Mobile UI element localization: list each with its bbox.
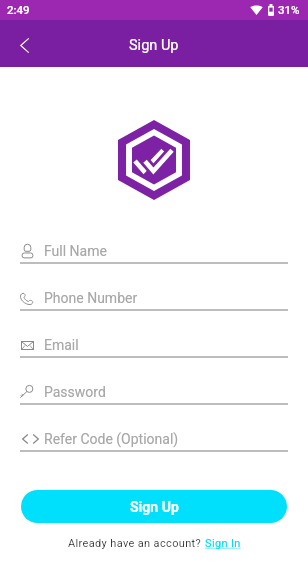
staticText: Sign Up (129, 37, 179, 54)
button[interactable]: Back (0, 20, 44, 67)
staticText: 31% (278, 3, 300, 16)
button[interactable]: Full Name (20, 231, 288, 262)
button[interactable]: Email (20, 325, 288, 356)
staticText: Full Name (44, 243, 107, 259)
staticText: Already have an account? (68, 537, 205, 550)
button[interactable]: Sign Up (21, 490, 287, 523)
staticText: Email (44, 337, 79, 353)
staticText: Password (44, 384, 106, 400)
staticText: Phone Number (44, 290, 138, 306)
staticText: Refer Code (Optional) (44, 431, 179, 447)
staticText: Sign Up (130, 499, 179, 515)
button[interactable]: Phone Number (20, 278, 288, 309)
button[interactable]: Password (20, 372, 288, 403)
button[interactable]: Sign In (205, 537, 241, 550)
staticText: 2:49 (7, 3, 30, 16)
button[interactable]: Refer Code (Optional) (20, 419, 288, 450)
